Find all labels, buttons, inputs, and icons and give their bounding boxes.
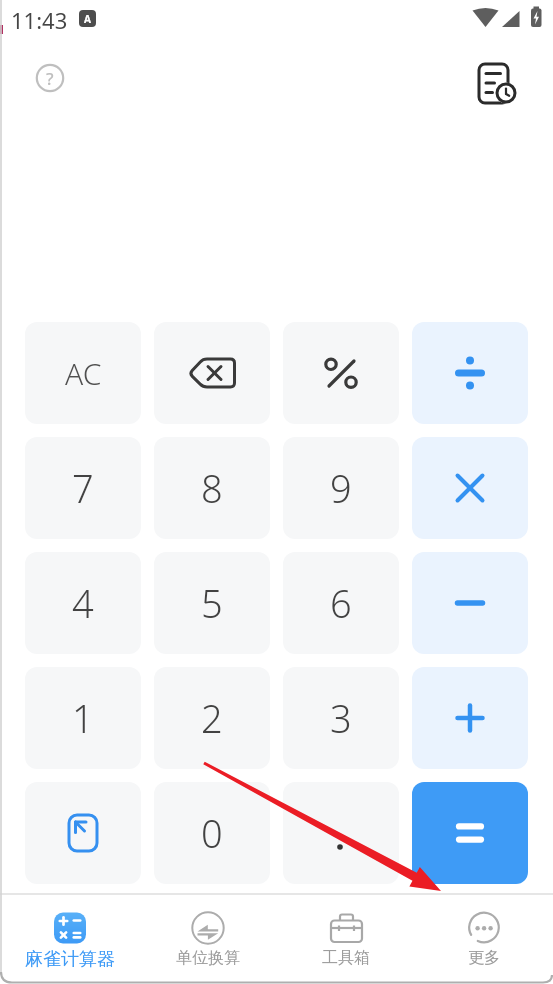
staticText: 3 [330,692,352,744]
staticText: 5 [201,577,223,629]
button[interactable]: 8 [154,437,270,539]
staticText: 0 [201,807,223,859]
staticText: 9 [330,462,352,514]
button[interactable] [154,322,270,424]
button[interactable]: 5 [154,552,270,654]
button[interactable]: 7 [25,437,141,539]
button[interactable]: AC [25,322,141,424]
button[interactable] [412,552,528,654]
staticText: 麻雀计算器 [25,948,115,971]
staticText: AC [65,353,102,394]
button[interactable]: 6 [283,552,399,654]
button[interactable]: 单位换算 [139,895,277,984]
button[interactable] [474,60,518,104]
button[interactable]: 麻雀计算器 [0,895,139,984]
button[interactable]: 3 [283,667,399,769]
staticText: 1 [72,692,94,744]
staticText: 工具箱 [322,948,370,968]
staticText: 11:43 [11,5,68,35]
button[interactable]: 0 [154,782,270,884]
button[interactable] [412,322,528,424]
staticText: 6 [330,577,352,629]
button[interactable]: 工具箱 [277,895,415,984]
staticText: ? [46,67,54,90]
staticText: 7 [72,462,94,514]
staticText: 2 [201,692,223,744]
button[interactable]: ? [34,62,66,94]
staticText: 更多 [468,948,500,968]
staticText: 单位换算 [176,948,240,968]
button[interactable] [412,437,528,539]
button[interactable]: 2 [154,667,270,769]
staticText: A [84,12,91,26]
button[interactable] [283,322,399,424]
staticText: 4 [72,577,94,629]
button[interactable] [412,782,528,884]
button[interactable] [283,782,399,884]
button[interactable]: 9 [283,437,399,539]
button[interactable]: 1 [25,667,141,769]
button[interactable]: 4 [25,552,141,654]
button[interactable] [25,782,141,884]
button[interactable] [412,667,528,769]
button[interactable]: 更多 [415,895,553,984]
staticText: 8 [201,462,223,514]
